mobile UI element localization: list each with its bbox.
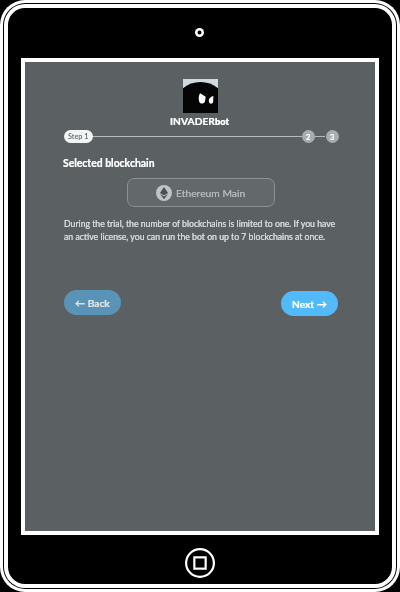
button[interactable]: ← Back [64, 290, 121, 315]
staticText: 3 [330, 132, 335, 141]
staticText: Next → [292, 298, 327, 310]
button[interactable]: Home [185, 548, 215, 578]
staticText: INVADER [170, 115, 215, 127]
button[interactable]: Ethereum Main [127, 178, 275, 207]
other: Camera [195, 28, 204, 37]
staticText: Ethereum Main [176, 187, 246, 199]
button[interactable]: 2 [302, 130, 315, 143]
staticText: Step 1 [68, 132, 89, 141]
button[interactable]: Step 1 [64, 130, 93, 143]
button[interactable]: 3 [326, 130, 339, 143]
staticText: ← Back [75, 297, 110, 309]
staticText: Selected blockchain [63, 157, 155, 169]
button[interactable]: Next → [281, 291, 338, 316]
staticText: During the trial, the number of blockcha… [64, 218, 343, 242]
staticText: bot [215, 116, 230, 127]
staticText: 2 [306, 132, 311, 141]
